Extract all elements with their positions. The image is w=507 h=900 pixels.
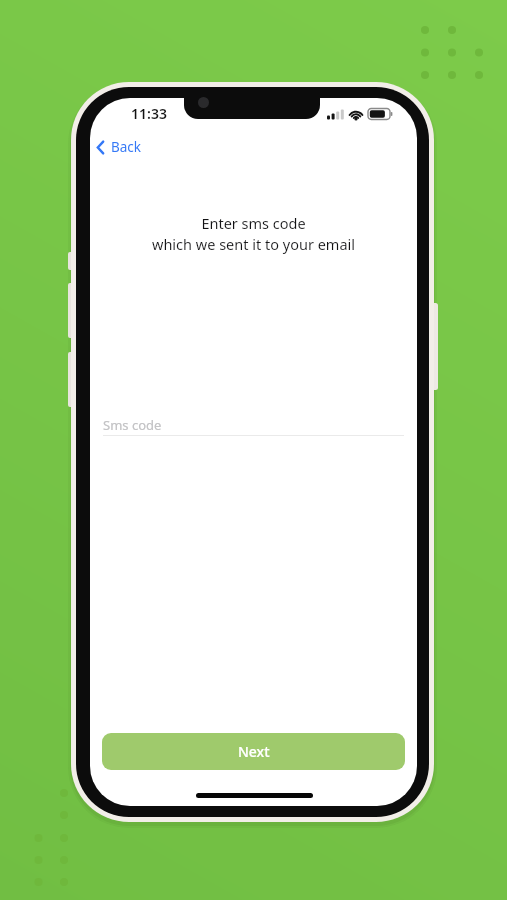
staticText: Sms code bbox=[103, 416, 162, 434]
staticText: 11:33 bbox=[131, 104, 167, 123]
staticText: Enter sms code which we sent it to your … bbox=[152, 213, 355, 254]
button[interactable]: Back bbox=[96, 138, 142, 156]
staticText: Next bbox=[238, 742, 270, 761]
staticText: Back bbox=[111, 138, 142, 156]
button[interactable]: Next bbox=[102, 733, 405, 770]
